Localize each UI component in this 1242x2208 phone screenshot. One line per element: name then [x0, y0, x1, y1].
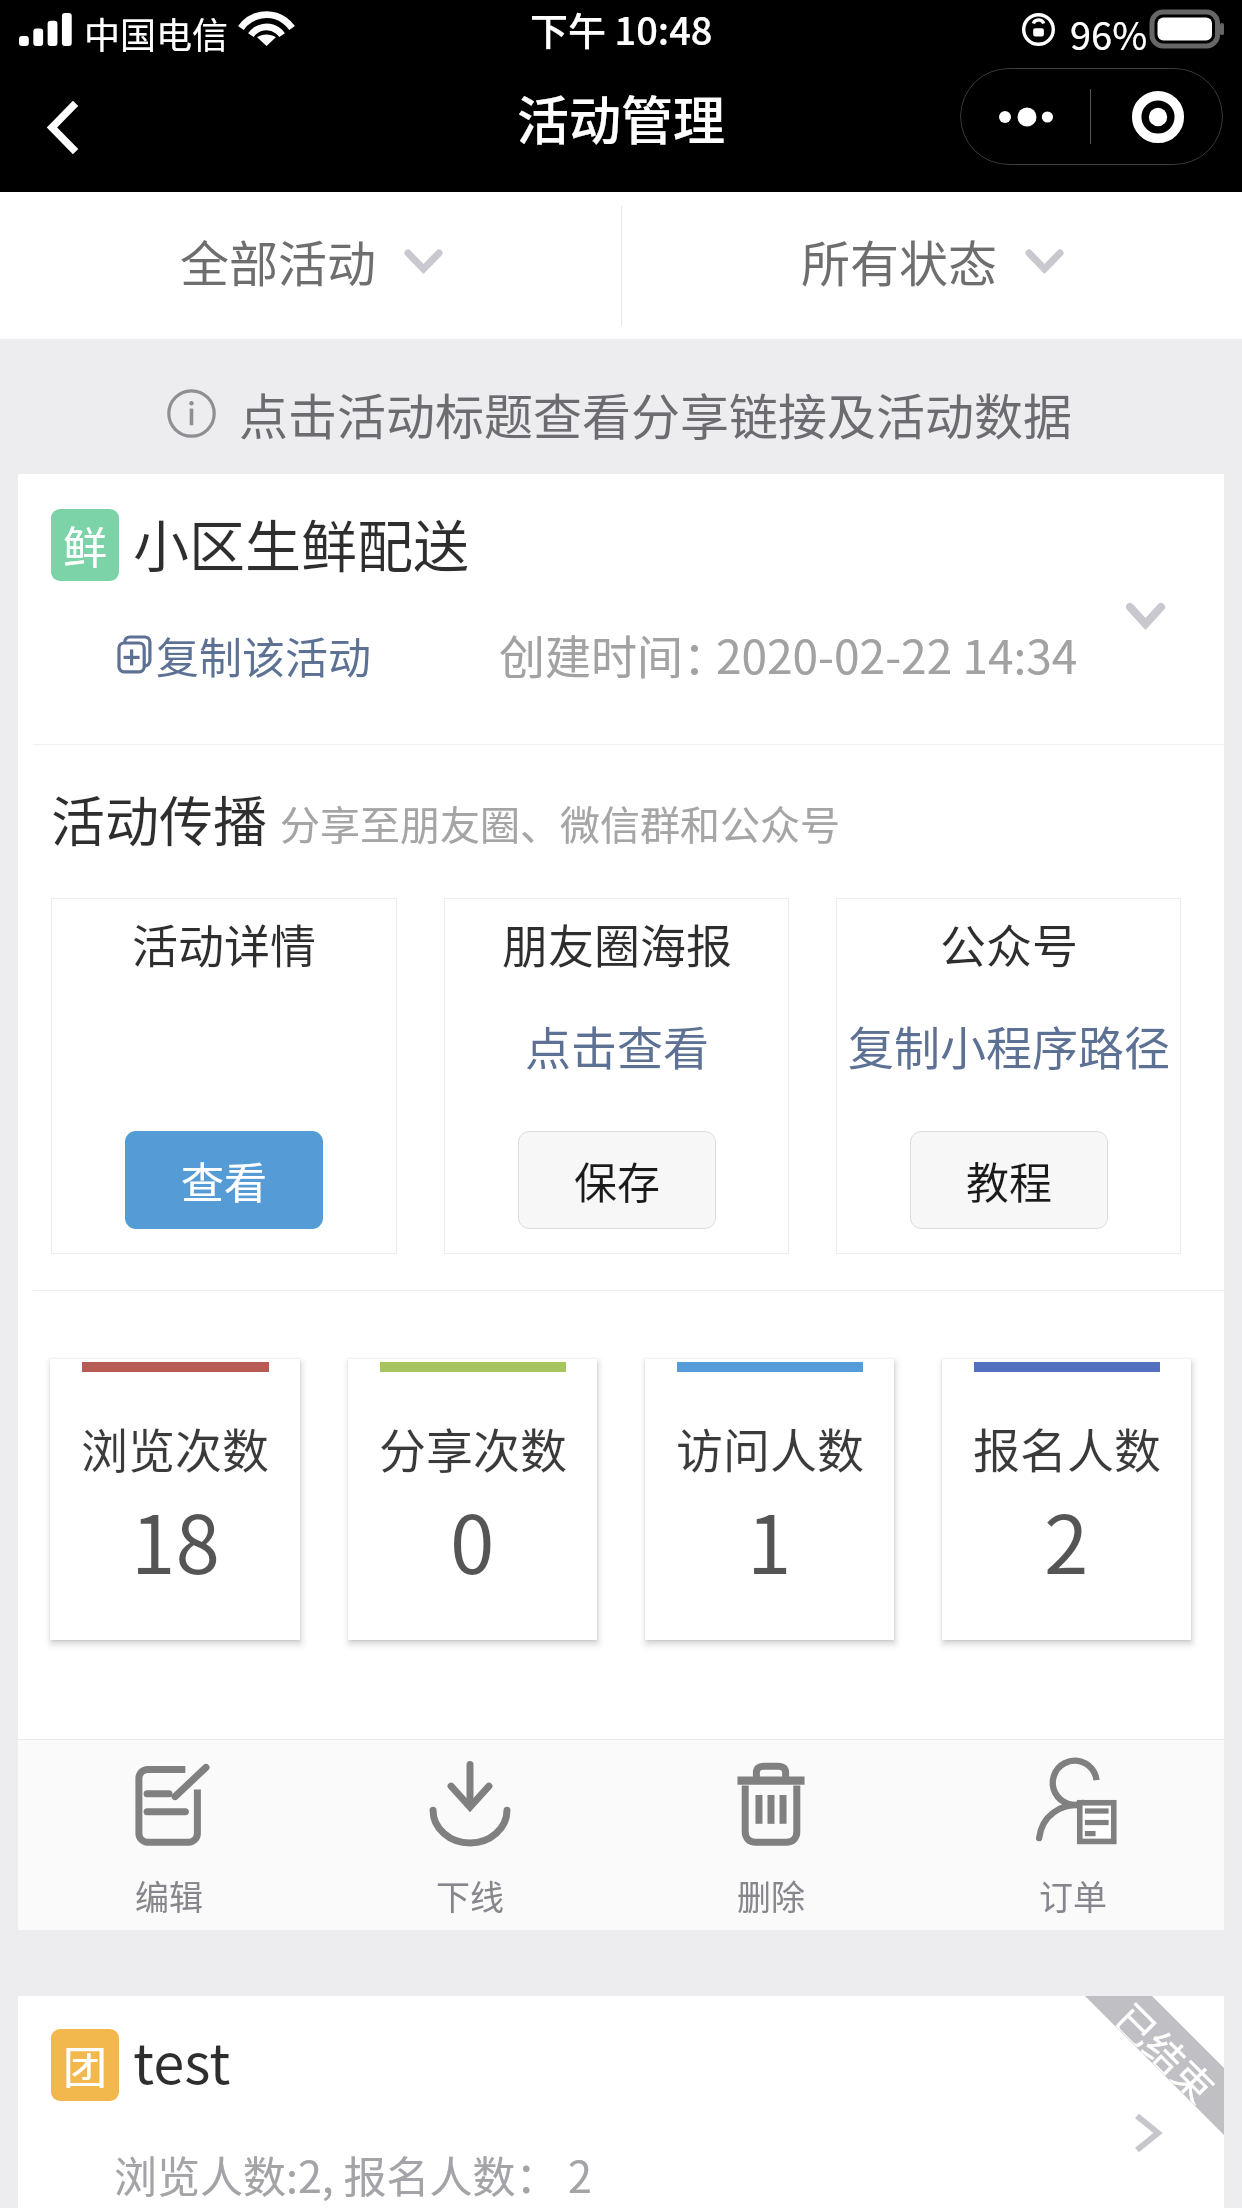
button[interactable]: 鲜 — [18, 474, 1224, 744]
staticText: 已结束 — [1111, 1989, 1229, 2107]
staticText: test — [133, 2019, 231, 2100]
button[interactable]: Back — [0, 71, 124, 183]
staticText: 96% — [1070, 6, 1148, 61]
button[interactable]: 所有状态 — [621, 192, 1242, 339]
staticText: 点击活动标题查看分享链接及活动数据 — [239, 378, 1073, 449]
staticText: 分享至朋友圈、微信群和公众号 — [280, 794, 840, 852]
staticText: 公众号 — [940, 910, 1078, 977]
button[interactable]: 朋友圈海报 — [444, 898, 789, 1254]
button[interactable]: 报名人数 — [942, 1359, 1191, 1640]
button[interactable]: 下线 — [319, 1740, 620, 1930]
staticText: 2 — [1044, 1481, 1089, 1597]
staticText: 1 — [747, 1481, 792, 1597]
staticText: 小区生鲜配送 — [133, 502, 469, 583]
staticText: 下午 10:48 — [530, 1, 713, 56]
button[interactable]: 订单 — [922, 1740, 1224, 1930]
staticText: 2020-02-22 14:34 — [716, 621, 1078, 688]
button[interactable]: 全部活动 — [0, 192, 621, 339]
staticText: 查看 — [181, 1149, 267, 1211]
staticText: 保存 — [574, 1149, 660, 1211]
button[interactable]: 浏览次数 — [50, 1359, 300, 1640]
staticText: 教程 — [966, 1149, 1052, 1211]
staticText: 创建时间： — [499, 621, 729, 688]
button[interactable]: 公众号 — [836, 898, 1181, 1254]
staticText: 访问人数 — [676, 1413, 864, 1481]
staticText: 中国电信 — [84, 7, 229, 59]
staticText: 下线 — [436, 1871, 504, 1920]
staticText: 活动详情 — [132, 910, 316, 977]
staticText: 所有状态 — [801, 225, 998, 296]
staticText: 鲜 — [63, 513, 107, 577]
staticText: 朋友圈海报 — [502, 910, 732, 977]
staticText: 浏览次数 — [81, 1413, 269, 1481]
staticText: 浏览人数:2, 报名人数： 2 — [114, 2143, 592, 2205]
button[interactable]: 保存 — [518, 1131, 716, 1229]
button[interactable]: More options — [960, 68, 1091, 165]
staticText: 编辑 — [135, 1871, 203, 1920]
button[interactable]: 删除 — [620, 1740, 922, 1930]
staticText: 活动管理 — [517, 80, 726, 155]
staticText: 删除 — [737, 1871, 805, 1920]
button[interactable]: 团 — [18, 1996, 1224, 2208]
button[interactable]: 访问人数 — [645, 1359, 894, 1640]
button[interactable]: 活动详情 — [51, 898, 397, 1254]
staticText: 点击查看 — [525, 1012, 709, 1079]
staticText: 全部活动 — [180, 225, 377, 296]
button[interactable]: 查看 — [125, 1131, 323, 1229]
button[interactable]: 点击活动标题查看分享链接及活动数据 — [0, 339, 1242, 468]
staticText: 活动传播 — [51, 779, 267, 857]
staticText: 团 — [63, 2033, 107, 2097]
staticText: 0 — [450, 1481, 495, 1597]
button[interactable]: Close mini program — [1092, 68, 1223, 165]
button[interactable]: 复制该活动 — [117, 624, 371, 686]
staticText: 订单 — [1039, 1871, 1107, 1920]
staticText: 报名人数 — [973, 1413, 1161, 1481]
staticText: 复制小程序路径 — [848, 1012, 1170, 1079]
button[interactable]: 分享次数 — [348, 1359, 597, 1640]
staticText: 复制该活动 — [156, 624, 371, 686]
staticText: 分享次数 — [379, 1413, 567, 1481]
staticText: 18 — [131, 1481, 220, 1597]
button[interactable]: 教程 — [910, 1131, 1108, 1229]
button[interactable]: 编辑 — [18, 1740, 319, 1930]
